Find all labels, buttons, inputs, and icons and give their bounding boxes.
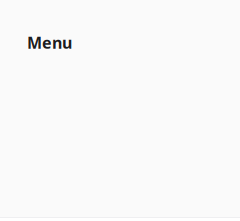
button[interactable]: Menu [27, 32, 72, 53]
staticText: Menu [27, 32, 72, 53]
